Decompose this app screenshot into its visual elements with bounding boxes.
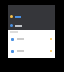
button[interactable]	[8, 36, 55, 42]
button[interactable]	[8, 48, 55, 54]
